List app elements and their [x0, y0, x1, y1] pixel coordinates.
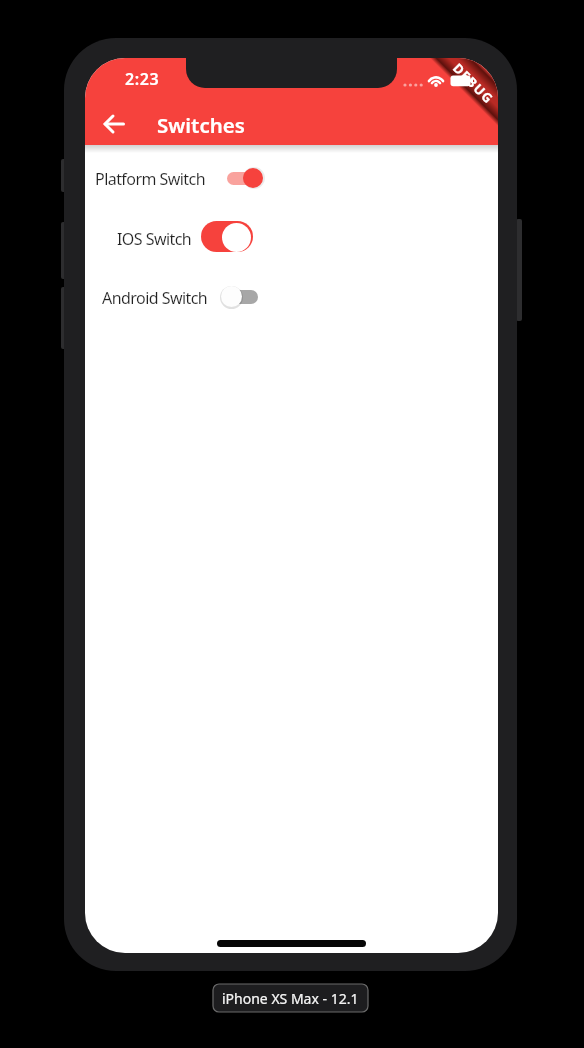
- staticText: DEBUG: [449, 59, 498, 108]
- button[interactable]: [92, 102, 136, 146]
- staticText: Android Switch: [102, 287, 208, 307]
- button[interactable]: [218, 279, 258, 315]
- staticText: iPhone XS Max - 12.1: [222, 989, 359, 1008]
- button[interactable]: [201, 221, 253, 252]
- staticText: Platform Switch: [95, 168, 206, 188]
- staticText: Switches: [157, 111, 245, 138]
- staticText: IOS Switch: [117, 228, 192, 248]
- button[interactable]: iPhone XS Max - 12.1: [213, 984, 368, 1012]
- staticText: 2:23: [125, 68, 160, 90]
- button[interactable]: [221, 160, 261, 196]
